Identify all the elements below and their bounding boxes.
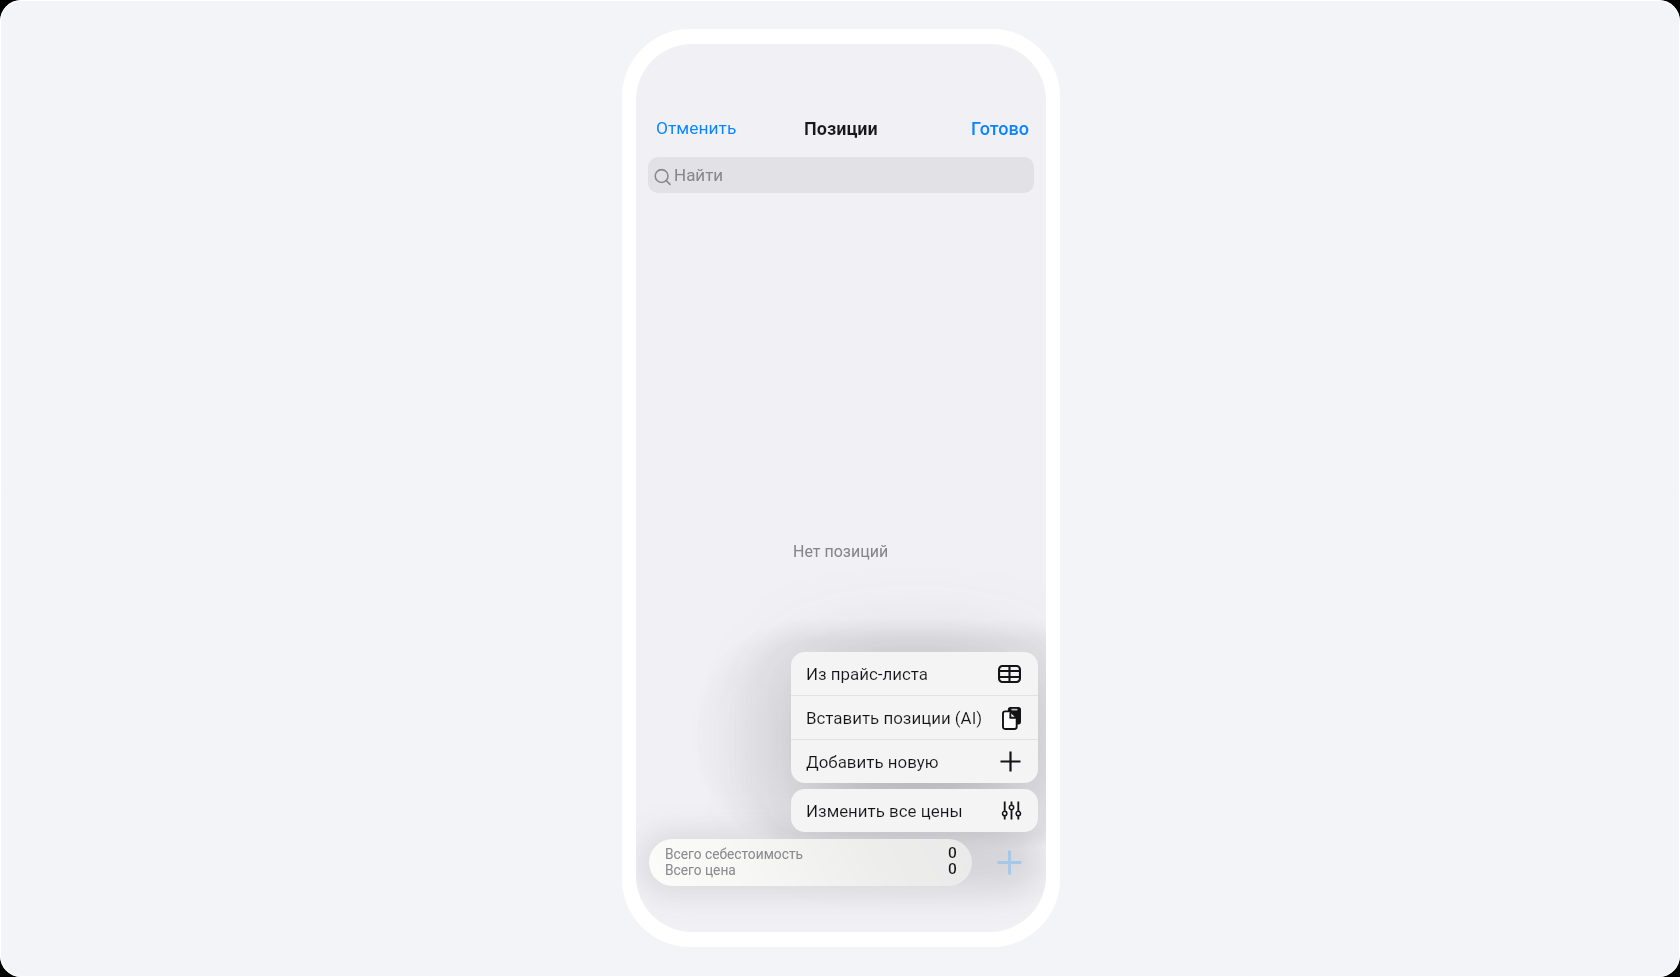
button[interactable]: Из прайс-листа <box>791 652 1038 695</box>
button[interactable]: Всего себестоимость <box>649 839 972 886</box>
staticText: Всего цена <box>665 862 736 878</box>
staticText: Готово <box>971 118 1030 139</box>
staticText: Вставить позиции (AI) <box>806 708 983 728</box>
button[interactable]: Добавить новую <box>791 740 1038 783</box>
button[interactable]: Отменить <box>646 110 747 146</box>
staticText: Из прайс-листа <box>806 664 929 684</box>
button[interactable]: Готово <box>961 110 1039 146</box>
staticText: Добавить новую <box>806 752 939 772</box>
staticText: Нет позиций <box>793 542 889 561</box>
staticText: Позиции <box>804 118 878 139</box>
button[interactable]: Add position <box>986 839 1032 885</box>
button[interactable]: Вставить позиции (AI) <box>791 696 1038 739</box>
button[interactable]: Найти <box>648 157 1034 193</box>
staticText: Изменить все цены <box>806 801 963 821</box>
staticText: Всего себестоимость <box>665 846 803 862</box>
staticText: Найти <box>674 165 724 185</box>
staticText: 0 <box>948 860 957 878</box>
staticText: 0 <box>948 844 957 862</box>
staticText: Отменить <box>656 118 737 138</box>
button[interactable]: Изменить все цены <box>791 789 1038 832</box>
